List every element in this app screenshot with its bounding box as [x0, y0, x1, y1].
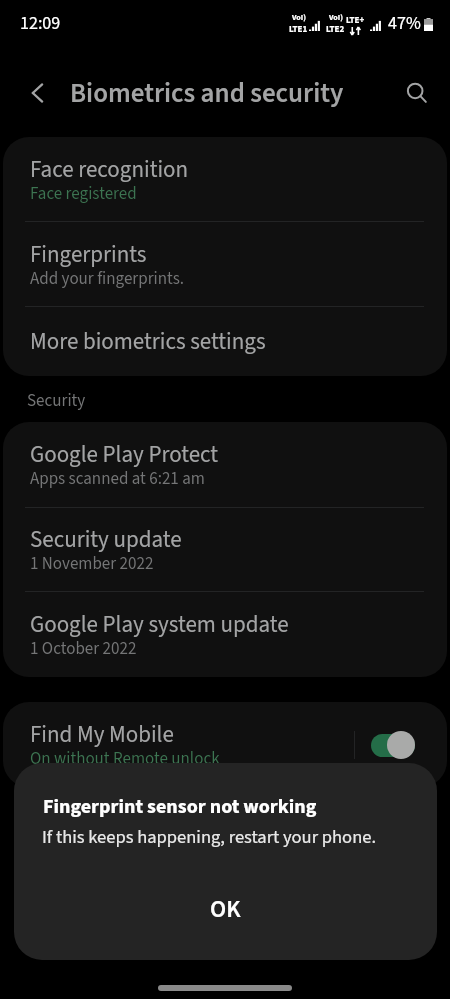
staticText: LTE2: [326, 23, 345, 36]
staticText: OK: [210, 892, 241, 926]
staticText: 1 October 2022: [30, 637, 137, 661]
staticText: On without Remote unlock: [30, 747, 220, 771]
staticText: Security: [27, 389, 86, 413]
button[interactable]: Find My Mobile: [3, 702, 447, 787]
staticText: Fingerprints: [30, 238, 147, 271]
staticText: Biometrics and security: [70, 74, 344, 112]
button[interactable]: Face recognition: [3, 137, 447, 221]
staticText: LTE+: [346, 14, 365, 27]
staticText: Apps scanned at 6:21 am: [30, 467, 205, 491]
staticText: Fingerprint sensor not working: [43, 793, 317, 821]
staticText: If this keeps happening, restart your ph…: [42, 824, 377, 850]
button[interactable]: OK: [14, 881, 437, 937]
button[interactable]: Security update: [3, 508, 447, 591]
staticText: Face recognition: [30, 153, 189, 186]
staticText: Security update: [30, 523, 182, 556]
staticText: 12:09: [20, 11, 61, 37]
button[interactable]: Google Play system update: [3, 592, 447, 677]
staticText: More biometrics settings: [30, 325, 266, 358]
button[interactable]: More biometrics settings: [3, 307, 447, 376]
button[interactable]: Find My Mobile toggle: [371, 730, 415, 760]
staticText: VoI): [329, 12, 343, 23]
button[interactable]: Navigate up: [14, 69, 62, 117]
staticText: Google Play system update: [30, 608, 289, 641]
staticText: 47%: [388, 11, 421, 37]
staticText: Find My Mobile: [30, 718, 174, 751]
button[interactable]: Search: [393, 69, 441, 117]
staticText: Face registered: [30, 182, 137, 206]
staticText: LTE1: [289, 23, 308, 36]
button[interactable]: Google Play Protect: [3, 422, 447, 507]
button[interactable]: Fingerprints: [3, 222, 447, 306]
staticText: Add your fingerprints.: [30, 267, 184, 291]
staticText: 1 November 2022: [30, 552, 154, 576]
staticText: VoI): [292, 12, 306, 23]
staticText: Google Play Protect: [30, 438, 219, 471]
